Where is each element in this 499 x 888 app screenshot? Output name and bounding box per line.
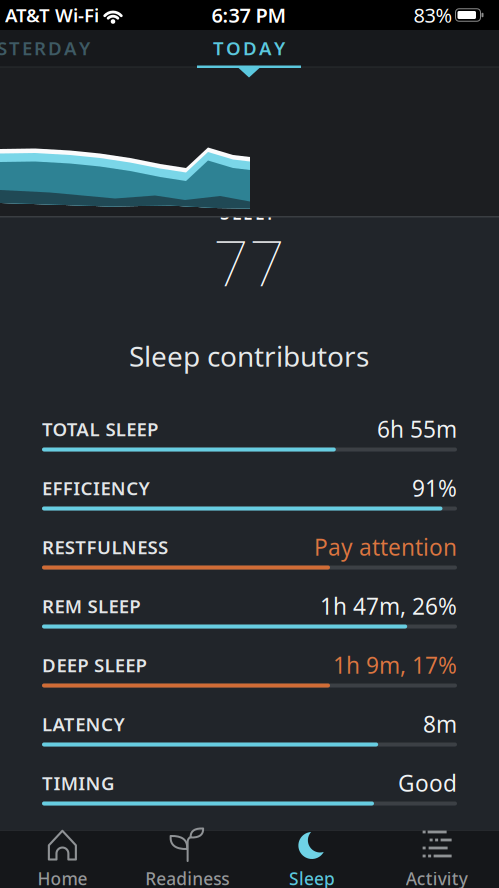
staticText: 1h 9m, 17% [333,650,457,680]
staticText: Y E S T E R D A Y [0,36,90,60]
button[interactable]: Y E S T E R D A Y [0,37,101,59]
staticText: Readiness [145,867,229,888]
button[interactable]: T O D A Y [199,37,299,59]
staticText: TIMING [42,771,115,795]
button[interactable]: Activity [374,830,499,888]
staticText: AT&T Wi-Fi [5,3,99,27]
staticText: TOTAL SLEEP [42,417,158,441]
button[interactable]: Sleep [249,830,374,888]
button[interactable]: Home [0,830,125,888]
staticText: REM SLEEP [42,594,140,618]
staticText: Activity [406,867,468,888]
staticText: 77 [213,220,285,304]
staticText: Pay attention [314,532,457,562]
staticText: Sleep [289,867,335,888]
staticText: T O D A Y [213,36,285,60]
staticText: 6h 55m [377,414,457,444]
staticText: Good [398,768,457,798]
staticText: LATENCY [42,712,124,736]
staticText: Sleep contributors [129,337,369,375]
staticText: 1h 47m, 26% [320,591,457,621]
staticText: EFFICIENCY [42,476,150,500]
staticText: 83% [413,2,452,28]
button[interactable]: Readiness [125,830,250,888]
staticText: S L E E P [220,201,278,224]
staticText: 6:37 PM [211,2,286,28]
staticText: RESTFULNESS [42,535,168,559]
staticText: 8m [423,709,457,739]
staticText: Home [37,867,87,888]
staticText: 91% [412,473,457,503]
staticText: DEEP SLEEP [42,653,147,677]
